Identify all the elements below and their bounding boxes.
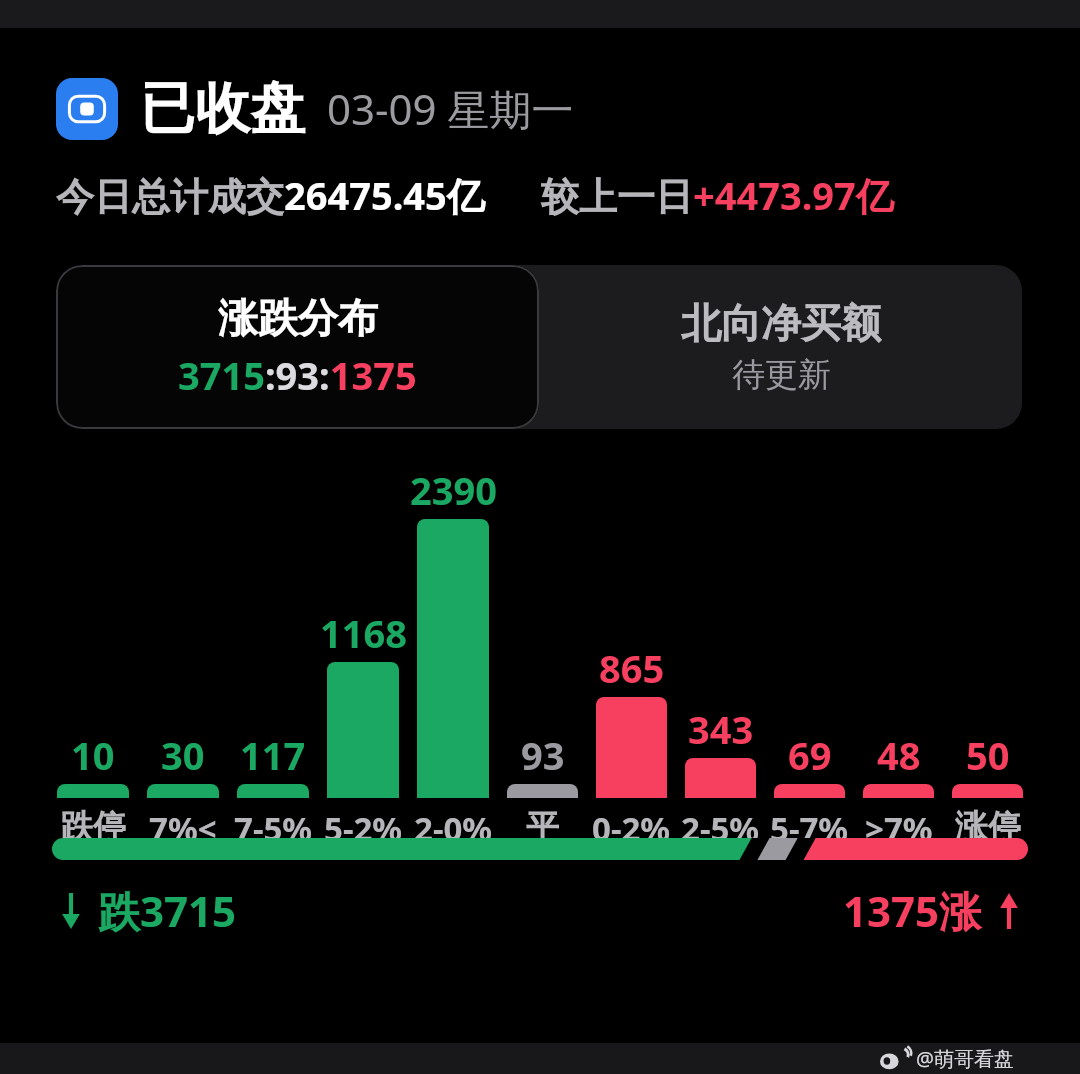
staticText: 平 — [526, 806, 559, 838]
button[interactable]: 北向净买额 — [539, 265, 1022, 429]
staticText: 2-0% — [414, 806, 493, 838]
staticText: 865 — [599, 642, 665, 694]
staticText: 50 — [966, 729, 1010, 781]
staticText: 48 — [877, 729, 921, 781]
staticText: 北向净买额 — [681, 298, 881, 348]
button[interactable]: App icon — [56, 78, 118, 140]
staticText: 跌停 — [60, 806, 126, 838]
staticText: 30 — [161, 729, 205, 781]
staticText: 93 — [521, 729, 565, 781]
staticText: 343 — [688, 703, 754, 755]
staticText: >7% — [865, 806, 933, 838]
staticText: 较上一日+4473.97亿 — [541, 169, 894, 221]
staticText: 已收盘 — [140, 74, 305, 143]
staticText: 1375涨 — [843, 882, 982, 939]
staticText: 7%< — [149, 806, 217, 838]
staticText: 3715:93:1375 — [178, 349, 417, 401]
button[interactable]: 涨跌分布 — [56, 265, 539, 429]
staticText: 7-5% — [234, 806, 313, 838]
staticText: 5-7% — [770, 806, 849, 838]
staticText: 5-2% — [324, 806, 403, 838]
staticText: 117 — [240, 729, 306, 781]
staticText: 03-09 星期一 — [327, 80, 574, 137]
staticText: 10 — [71, 729, 115, 781]
staticText: 跌3715 — [98, 882, 237, 939]
staticText: 待更新 — [732, 354, 831, 396]
staticText: 69 — [788, 729, 832, 781]
staticText: 涨跌分布 — [218, 293, 378, 343]
staticText: 2390 — [410, 464, 497, 516]
staticText: 0-2% — [592, 806, 671, 838]
staticText: @萌哥看盘 — [916, 1045, 1014, 1072]
staticText: 涨停 — [955, 806, 1021, 838]
staticText: 1168 — [320, 607, 407, 659]
staticText: 2-5% — [681, 806, 760, 838]
staticText: 今日总计成交26475.45亿 — [56, 169, 485, 221]
